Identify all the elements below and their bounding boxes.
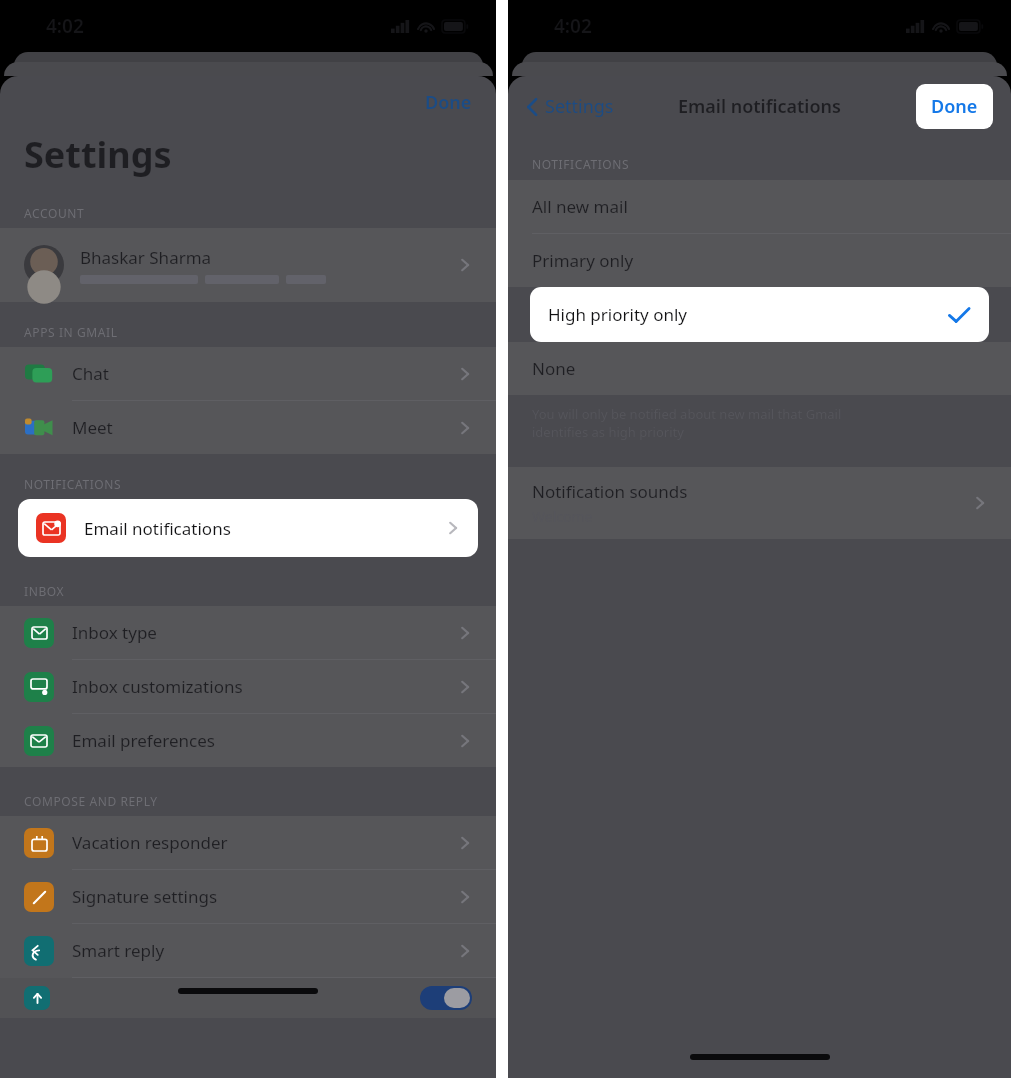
- staticText: High priority only: [548, 303, 687, 326]
- button[interactable]: Settings: [508, 88, 622, 125]
- staticText: Settings: [24, 130, 172, 179]
- button[interactable]: All new mail: [508, 180, 1011, 234]
- button[interactable]: Email notifications: [18, 499, 478, 557]
- staticText: Vacation responder: [72, 831, 228, 854]
- button[interactable]: Chat: [0, 347, 496, 401]
- button[interactable]: Primary only: [508, 234, 1011, 287]
- staticText: Email notifications: [84, 517, 231, 540]
- staticText: Done: [931, 94, 978, 119]
- staticText: Primary only: [532, 249, 634, 272]
- button[interactable]: Smart reply: [0, 924, 496, 978]
- button[interactable]: None: [508, 342, 1011, 395]
- staticText: None: [532, 357, 576, 380]
- staticText: Bhaskar Sharma: [80, 246, 212, 269]
- staticText: All new mail: [532, 195, 628, 218]
- staticText: 4:02: [554, 13, 592, 39]
- staticText: Email notifications: [678, 94, 841, 119]
- button[interactable]: Done: [916, 84, 993, 129]
- staticText: Meet: [72, 416, 113, 439]
- staticText: Inbox type: [72, 621, 157, 644]
- staticText: Notification sounds: [532, 480, 688, 503]
- button[interactable]: Notification sounds: [508, 467, 1011, 539]
- button[interactable]: Signature settings: [0, 870, 496, 924]
- staticText: Chat: [72, 362, 109, 385]
- button[interactable]: Inbox customizations: [0, 660, 496, 714]
- staticText: INBOX: [24, 583, 65, 599]
- staticText: 4:02: [46, 13, 84, 39]
- staticText: NOTIFICATIONS: [24, 476, 122, 492]
- button[interactable]: Done: [401, 82, 496, 123]
- button[interactable]: Inbox type: [0, 606, 496, 660]
- staticText: Smart reply: [72, 939, 165, 962]
- staticText: Settings: [545, 94, 614, 119]
- staticText: APPS IN GMAIL: [24, 324, 118, 340]
- staticText: Signature settings: [72, 885, 218, 908]
- staticText: ACCOUNT: [24, 205, 85, 221]
- staticText: NOTIFICATIONS: [532, 156, 630, 172]
- button[interactable]: High priority only: [530, 287, 989, 342]
- staticText: COMPOSE AND REPLY: [24, 793, 158, 809]
- staticText: Inbox customizations: [72, 675, 243, 698]
- button[interactable]: Vacation responder: [0, 816, 496, 870]
- button[interactable]: Bhaskar Sharma: [0, 228, 496, 302]
- button[interactable]: Email preferences: [0, 714, 496, 767]
- staticText: Email preferences: [72, 729, 215, 752]
- button[interactable]: Meet: [0, 401, 496, 454]
